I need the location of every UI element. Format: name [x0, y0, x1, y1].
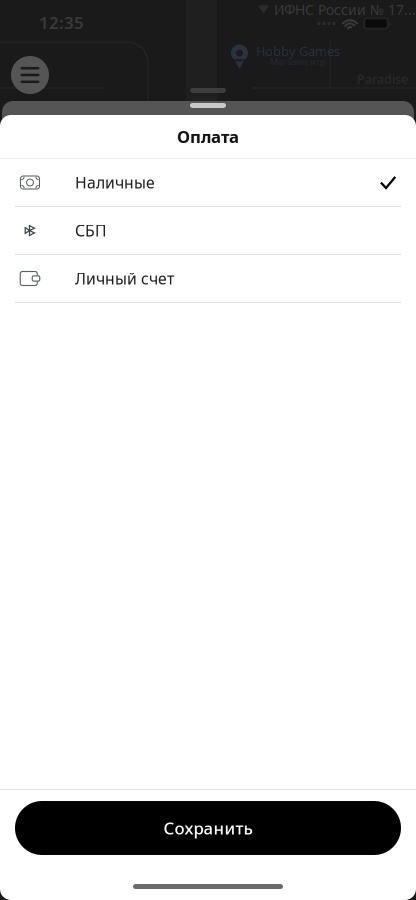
staticText: Наличные: [75, 172, 155, 193]
staticText: Paradise: [357, 70, 408, 88]
button[interactable]: Личный счет: [0, 255, 416, 303]
staticText: ИФНС России № 17...: [274, 0, 416, 19]
staticText: 12:35: [39, 11, 84, 34]
staticText: Сохранить: [163, 817, 252, 839]
button[interactable]: СБП: [0, 207, 416, 255]
button[interactable]: Menu: [11, 56, 49, 94]
staticText: Оплата: [177, 125, 239, 148]
button[interactable]: Сохранить: [0, 790, 416, 855]
staticText: Личный счет: [75, 268, 174, 289]
button[interactable]: Наличные: [0, 159, 416, 207]
staticText: Hobby Games: [256, 42, 340, 60]
staticText: Магазин игр: [270, 55, 326, 68]
staticText: СБП: [75, 220, 107, 241]
